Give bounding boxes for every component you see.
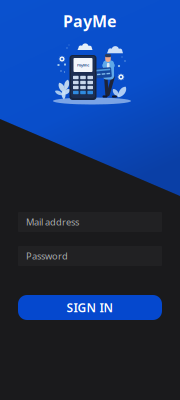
staticText: PayMe xyxy=(77,62,89,68)
staticText: SIGN IN xyxy=(66,299,113,315)
button[interactable]: Mail address xyxy=(18,212,162,232)
button[interactable]: Password xyxy=(18,246,162,266)
staticText: Mail address xyxy=(26,216,79,228)
button[interactable]: SIGN IN xyxy=(18,295,162,320)
staticText: Password xyxy=(26,250,68,262)
staticText: PayMe xyxy=(63,10,117,32)
